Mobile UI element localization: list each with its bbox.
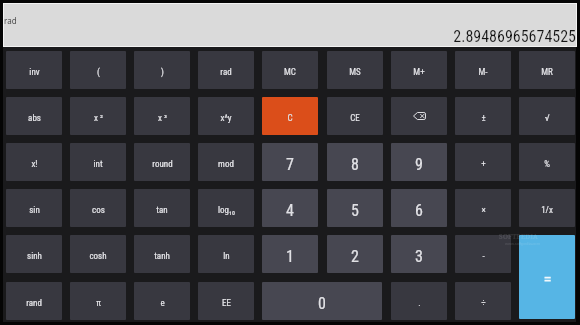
staticText: EE bbox=[222, 298, 231, 309]
staticText: 4 bbox=[286, 201, 294, 220]
button[interactable]: 8 bbox=[327, 143, 383, 181]
staticText: ± bbox=[481, 113, 486, 124]
staticText: SOFTPEDIA bbox=[499, 232, 539, 241]
button[interactable]: cos bbox=[70, 189, 126, 227]
button[interactable]: Decimal point bbox=[391, 282, 447, 320]
button[interactable]: 1/x bbox=[519, 189, 575, 227]
staticText: M- bbox=[478, 67, 488, 78]
button[interactable]: tan bbox=[134, 189, 190, 227]
button[interactable]: C bbox=[262, 97, 318, 135]
staticText: rand bbox=[26, 298, 42, 309]
staticText: round bbox=[152, 159, 173, 170]
staticText: MR bbox=[541, 67, 553, 78]
button[interactable]: abs bbox=[6, 97, 62, 135]
button[interactable]: ln bbox=[198, 235, 254, 273]
staticText: tanh bbox=[154, 251, 170, 262]
button[interactable]: Plus bbox=[455, 143, 511, 181]
staticText: log₁₀ bbox=[218, 205, 235, 216]
staticText: e bbox=[160, 298, 165, 309]
button[interactable]: rand bbox=[6, 282, 62, 320]
button[interactable]: CE bbox=[327, 97, 383, 135]
button[interactable]: rad bbox=[198, 51, 254, 89]
button[interactable]: MS bbox=[327, 51, 383, 89]
staticText: MS bbox=[349, 67, 361, 78]
staticText: sin bbox=[29, 205, 40, 216]
button[interactable]: M+ bbox=[391, 51, 447, 89]
staticText: x^y bbox=[220, 113, 232, 124]
button[interactable]: ( bbox=[70, 51, 126, 89]
staticText: mod bbox=[218, 159, 234, 170]
button[interactable]: e bbox=[134, 282, 190, 320]
staticText: % bbox=[544, 159, 550, 170]
button[interactable]: M- bbox=[455, 51, 511, 89]
button[interactable]: ) bbox=[134, 51, 190, 89]
staticText: = bbox=[543, 269, 552, 289]
button[interactable]: mod bbox=[198, 143, 254, 181]
button[interactable]: 9 bbox=[391, 143, 447, 181]
button[interactable]: x ³ bbox=[134, 97, 190, 135]
staticText: rad bbox=[4, 15, 17, 26]
staticText: ( bbox=[97, 67, 100, 78]
staticText: cosh bbox=[89, 251, 107, 262]
staticText: C bbox=[287, 113, 293, 124]
staticText: ln bbox=[223, 251, 230, 262]
button[interactable]: 2 bbox=[327, 235, 383, 273]
button[interactable]: Square root bbox=[519, 97, 575, 135]
staticText: √ bbox=[545, 113, 550, 124]
button[interactable]: π bbox=[70, 282, 126, 320]
button[interactable]: inv bbox=[6, 51, 62, 89]
staticText: abs bbox=[28, 113, 41, 124]
button[interactable]: Minus bbox=[455, 235, 511, 273]
staticText: x! bbox=[31, 159, 38, 170]
button[interactable]: tanh bbox=[134, 235, 190, 273]
staticText: 6 bbox=[415, 201, 423, 220]
button[interactable]: 0 bbox=[262, 282, 382, 320]
staticText: . bbox=[418, 298, 421, 309]
staticText: CE bbox=[350, 113, 360, 124]
button[interactable]: x ² bbox=[70, 97, 126, 135]
staticText: 2 bbox=[351, 247, 359, 266]
staticText: x ³ bbox=[158, 113, 167, 124]
staticText: 1 bbox=[286, 247, 294, 266]
staticText: rad bbox=[220, 67, 232, 78]
button[interactable]: sin bbox=[6, 189, 62, 227]
staticText: inv bbox=[29, 67, 40, 78]
staticText: ) bbox=[161, 67, 164, 78]
button[interactable]: round bbox=[134, 143, 190, 181]
staticText: cos bbox=[92, 205, 105, 216]
button[interactable]: 6 bbox=[391, 189, 447, 227]
button[interactable]: MR bbox=[519, 51, 575, 89]
button[interactable]: log₁₀ bbox=[198, 189, 254, 227]
button[interactable]: 5 bbox=[327, 189, 383, 227]
button[interactable]: Multiply bbox=[455, 189, 511, 227]
staticText: - bbox=[482, 251, 485, 262]
button[interactable]: 7 bbox=[262, 143, 318, 181]
button[interactable]: x^y bbox=[198, 97, 254, 135]
button[interactable]: sinh bbox=[6, 235, 62, 273]
staticText: 8 bbox=[351, 155, 359, 174]
button[interactable]: % bbox=[519, 143, 575, 181]
button[interactable]: x! bbox=[6, 143, 62, 181]
button[interactable]: 4 bbox=[262, 189, 318, 227]
staticText: 2.89486965674525 bbox=[4, 27, 576, 47]
staticText: 5 bbox=[351, 201, 359, 220]
button[interactable]: cosh bbox=[70, 235, 126, 273]
button[interactable]: Divide bbox=[455, 282, 511, 320]
staticText: tan bbox=[156, 205, 168, 216]
staticText: M+ bbox=[413, 67, 425, 78]
staticText: MC bbox=[284, 67, 296, 78]
button[interactable]: Plus minus bbox=[455, 97, 511, 135]
button[interactable]: MC bbox=[262, 51, 318, 89]
staticText: 7 bbox=[286, 155, 294, 174]
staticText: sinh bbox=[27, 251, 42, 262]
button[interactable]: Equals bbox=[519, 235, 575, 319]
staticText: π bbox=[96, 298, 101, 309]
button[interactable]: 1 bbox=[262, 235, 318, 273]
button[interactable]: int bbox=[70, 143, 126, 181]
staticText: www.softpedia.com bbox=[505, 241, 541, 246]
button[interactable]: Backspace bbox=[391, 97, 447, 135]
button[interactable]: 3 bbox=[391, 235, 447, 273]
staticText: x ² bbox=[94, 113, 103, 124]
staticText: × bbox=[481, 205, 486, 216]
button[interactable]: EE bbox=[198, 282, 254, 320]
